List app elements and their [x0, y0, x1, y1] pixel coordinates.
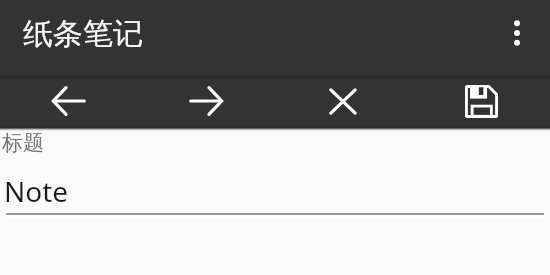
- button[interactable]: Forward: [137, 75, 274, 127]
- button[interactable]: More options: [500, 17, 532, 49]
- staticText: Note: [4, 172, 69, 210]
- button[interactable]: [0, 131, 550, 217]
- staticText: 纸条笔记: [23, 15, 143, 53]
- button[interactable]: Save: [412, 75, 550, 127]
- button[interactable]: Close: [274, 75, 412, 127]
- staticText: 标题: [2, 130, 44, 156]
- button[interactable]: Back: [0, 75, 137, 127]
